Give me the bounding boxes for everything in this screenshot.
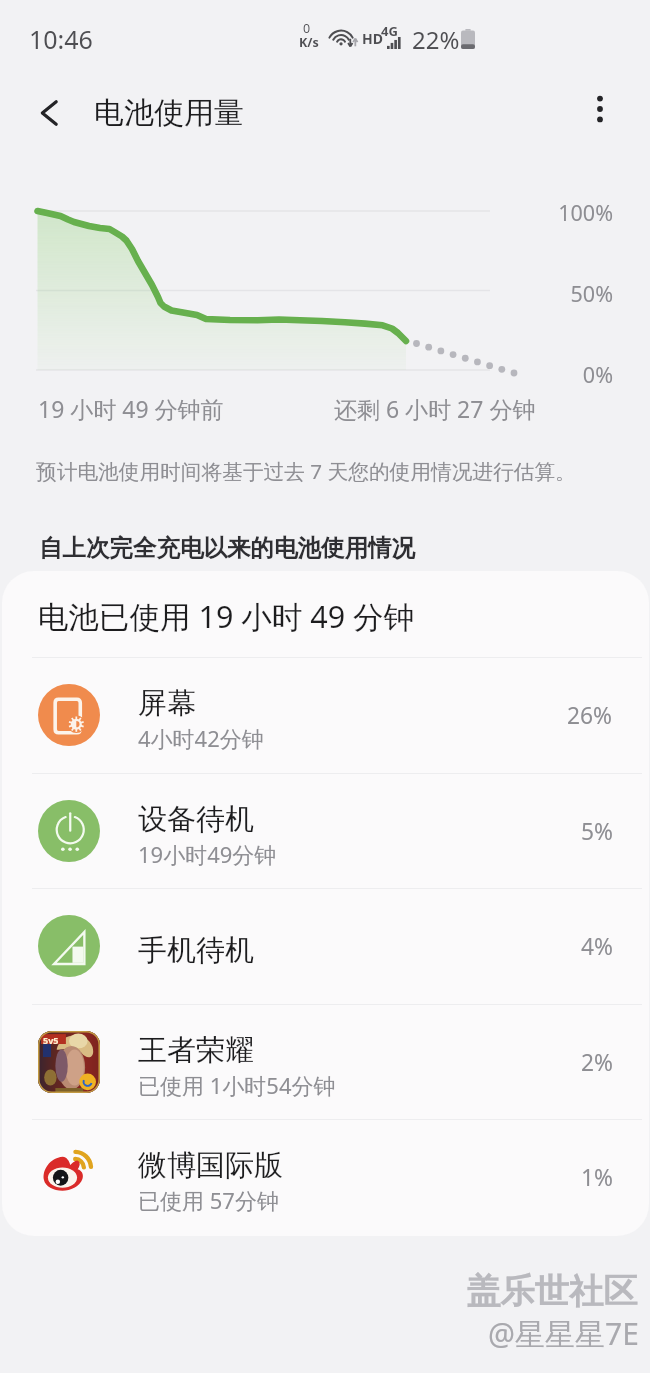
staticText: 王者荣耀 [138, 1032, 254, 1069]
staticText: 手机待机 [138, 932, 254, 969]
button[interactable]: More options [573, 82, 627, 136]
staticText: 2% [581, 1047, 613, 1078]
staticText: 100% [553, 198, 613, 227]
staticText: 50% [553, 279, 613, 308]
staticText: 已使用 1小时54分钟 [138, 1070, 336, 1100]
button[interactable]: 5v5 [2, 1004, 649, 1120]
staticText: 4小时42分钟 [138, 723, 264, 753]
button[interactable]: Back [22, 86, 76, 140]
button[interactable]: 手机待机 [2, 888, 649, 1004]
button[interactable]: 屏幕 [2, 657, 649, 773]
staticText: K/s [299, 34, 319, 51]
staticText: 1% [581, 1162, 613, 1193]
staticText: @星星星7E [488, 1313, 639, 1354]
staticText: 19小时49分钟 [138, 839, 277, 869]
staticText: 已使用 57分钟 [138, 1185, 279, 1215]
staticText: 26% [567, 700, 613, 731]
staticText: 0 [303, 20, 311, 37]
staticText: HD [362, 29, 383, 48]
staticText: 电池使用量 [94, 94, 244, 132]
staticText: 还剩 6 小时 27 分钟 [334, 393, 536, 424]
staticText: 自上次完全充电以来的电池使用情况 [39, 533, 415, 563]
staticText: 预计电池使用时间将基于过去 7 天您的使用情况进行估算。 [36, 457, 576, 485]
button[interactable]: 微博国际版 [2, 1119, 649, 1235]
staticText: 设备待机 [138, 801, 254, 838]
staticText: 22% [412, 23, 460, 56]
button[interactable]: 设备待机 [2, 773, 649, 889]
staticText: 盖乐世社区 [466, 1270, 638, 1313]
staticText: 5v5 [43, 1034, 59, 1046]
staticText: 微博国际版 [138, 1147, 283, 1184]
staticText: 5% [581, 816, 613, 847]
staticText: 4G [381, 22, 398, 40]
staticText: 4% [581, 931, 613, 962]
staticText: 0% [553, 360, 613, 389]
staticText: 屏幕 [138, 685, 196, 722]
staticText: 19 小时 49 分钟前 [38, 393, 224, 424]
staticText: 10:46 [29, 22, 93, 56]
staticText: 电池已使用 19 小时 49 分钟 [38, 595, 415, 637]
